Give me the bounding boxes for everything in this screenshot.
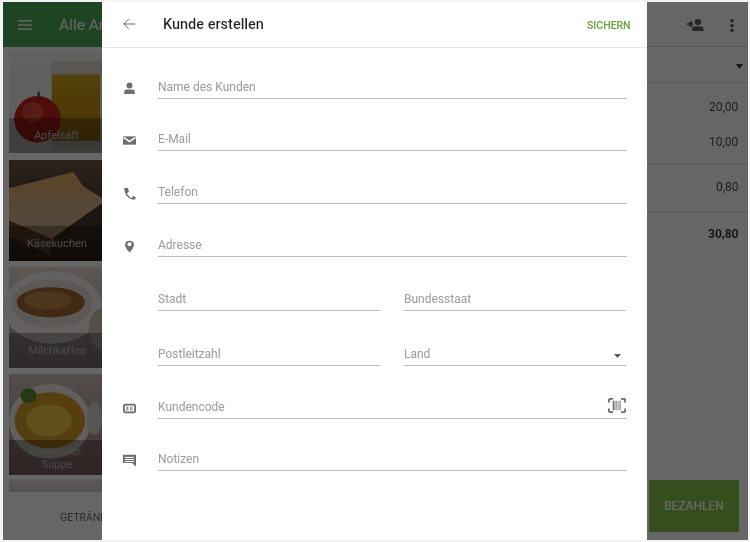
staticText: Notizen — [158, 452, 200, 466]
button[interactable]: More options — [720, 13, 744, 37]
staticText: Kundencode — [158, 400, 225, 414]
button[interactable]: Stadt — [158, 291, 380, 311]
button[interactable]: Expand — [729, 56, 749, 76]
button[interactable]: Postleitzahl — [158, 346, 380, 366]
button[interactable]: Land — [404, 346, 626, 366]
staticText: SICHERN — [587, 19, 631, 31]
staticText: Name des Kunden — [158, 80, 256, 94]
button[interactable]: Menu — [13, 13, 37, 37]
staticText: Telefon — [158, 185, 198, 199]
button[interactable]: Apfelsaft — [9, 51, 104, 153]
staticText: Käsekuchen — [27, 237, 87, 250]
button[interactable]: E-Mail — [158, 131, 627, 151]
button[interactable]: GETRÄNKE — [9, 492, 104, 540]
staticText: Kunde erstellen — [163, 16, 264, 33]
staticText: 0,80 — [716, 180, 739, 194]
staticText: 30,80 — [708, 227, 739, 241]
button[interactable]: SICHERN — [571, 7, 647, 43]
button[interactable]: Notizen — [158, 451, 627, 471]
staticText: GETRÄNKE — [60, 511, 113, 523]
staticText: Land — [404, 347, 431, 361]
staticText: Apfelsaft — [34, 129, 79, 142]
staticText: Adresse — [158, 238, 202, 252]
button[interactable]: Telefon — [158, 184, 627, 204]
button[interactable]: Name des Kunden — [158, 79, 627, 99]
button[interactable]: Rhabarber- Suppe — [9, 374, 104, 475]
staticText: Rhabarber- Suppe — [30, 445, 84, 471]
button[interactable]: BEZAHLEN — [649, 480, 739, 532]
staticText: Stadt — [158, 292, 187, 306]
button[interactable]: Kundencode — [158, 399, 627, 419]
staticText: 10,00 — [709, 135, 739, 149]
staticText: Bundesstaat — [404, 292, 472, 306]
staticText: Postleitzahl — [158, 347, 221, 361]
staticText: BEZAHLEN — [664, 499, 724, 513]
button[interactable]: Adresse — [158, 237, 627, 257]
button[interactable]: Milchkaffee — [9, 267, 104, 368]
button[interactable]: Käsekuchen — [9, 160, 104, 261]
button[interactable]: Bundesstaat — [404, 291, 626, 311]
staticText: Milchkaffee — [28, 344, 86, 357]
staticText: 20,00 — [709, 100, 739, 114]
button[interactable] — [9, 479, 104, 492]
button[interactable]: Back — [115, 11, 143, 39]
staticText: E-Mail — [158, 132, 191, 146]
button[interactable]: Add customer — [683, 13, 707, 37]
staticText: Alle Artikel — [59, 16, 133, 34]
